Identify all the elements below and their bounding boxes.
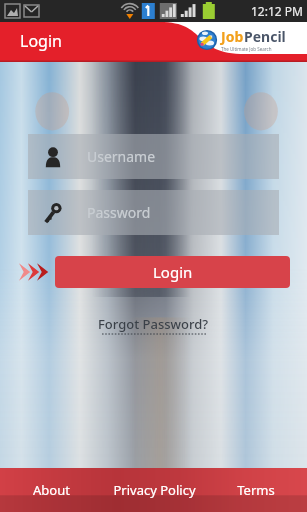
staticText: 12:12 PM — [251, 3, 303, 19]
staticText: Password — [87, 203, 151, 222]
button[interactable]: Forgot Password? — [92, 312, 215, 338]
staticText: Username — [87, 147, 156, 166]
staticText: Job — [221, 27, 244, 46]
button[interactable]: Login — [55, 256, 290, 288]
staticText: Privacy Policy — [113, 481, 196, 499]
button[interactable]: Password — [28, 190, 279, 235]
staticText: Login — [153, 262, 193, 282]
staticText: Pencil — [244, 27, 286, 46]
staticText: Login — [20, 30, 62, 52]
staticText: The Ultimate Job Search — [221, 46, 272, 52]
button[interactable]: Privacy Policy — [103, 468, 205, 512]
staticText: About — [33, 481, 70, 499]
staticText: Forgot Password? — [98, 315, 209, 333]
button[interactable]: Username — [28, 134, 279, 179]
button[interactable]: About — [0, 468, 103, 512]
staticText: Terms — [237, 481, 275, 499]
button[interactable]: Terms — [205, 468, 307, 512]
